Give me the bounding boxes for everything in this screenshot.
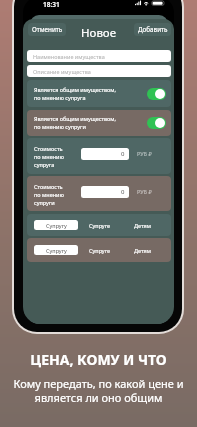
staticText: Новое	[81, 25, 117, 41]
staticText: 18:31	[43, 0, 60, 9]
button[interactable]: Стоимость по мнению супруги	[27, 176, 171, 211]
button[interactable]: Супруге	[78, 245, 121, 255]
staticText: Стоимость по мнению супруга	[34, 145, 64, 169]
button[interactable]: Описание имущества	[27, 65, 171, 77]
staticText: Детям	[134, 247, 151, 254]
staticText: 0	[121, 188, 125, 196]
button[interactable]: Детям	[121, 220, 164, 230]
staticText: 0	[121, 150, 125, 158]
button[interactable]: Стоимость по мнению супруга	[27, 138, 171, 174]
button[interactable]: Отменить	[28, 23, 66, 36]
button[interactable]: Супругу	[34, 245, 78, 255]
staticText: Кому передать, по какой цене и является …	[13, 376, 184, 405]
button[interactable]: 0	[81, 148, 129, 160]
staticText: Супругу	[46, 247, 67, 254]
button[interactable]: Супругу	[34, 220, 78, 230]
button[interactable]: Переключатель	[147, 117, 166, 129]
button[interactable]: Переключатель	[147, 88, 166, 100]
staticText: Является общим имуществом, по мнению суп…	[34, 86, 117, 102]
staticText: Наименование имущества	[33, 53, 105, 60]
button[interactable]: Является общим имуществом, по мнению суп…	[27, 80, 171, 107]
staticText: Отменить	[32, 25, 63, 34]
button[interactable]: Супруге	[78, 220, 121, 230]
button[interactable]: Наименование имущества	[27, 50, 171, 62]
staticText: Является общим имуществом, по мнению суп…	[34, 115, 117, 131]
staticText: Добавить	[138, 25, 168, 34]
staticText: Стоимость по мнению супруги	[34, 183, 64, 207]
staticText: РУБ ₽	[137, 150, 152, 157]
staticText: Описание имущества	[33, 68, 91, 75]
button[interactable]: Добавить	[134, 23, 171, 36]
staticText: ЦЕНА, КОМУ И ЧТО	[30, 350, 167, 369]
staticText: Супруге	[89, 222, 111, 229]
button[interactable]: Детям	[121, 245, 164, 255]
staticText: РУБ ₽	[137, 188, 152, 195]
staticText: Супругу	[46, 222, 67, 229]
button[interactable]: 0	[81, 186, 129, 198]
button[interactable]: Является общим имуществом, по мнению суп…	[27, 110, 171, 136]
staticText: Детям	[134, 222, 151, 229]
staticText: Супруге	[89, 247, 111, 254]
